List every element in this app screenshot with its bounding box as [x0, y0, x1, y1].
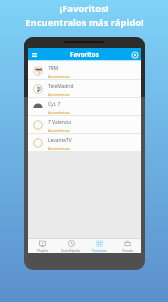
staticText: 7 Valencia — [48, 119, 72, 126]
staticText: ¡Favoritos! — [59, 2, 109, 15]
staticText: Autonómicas — [48, 92, 70, 97]
staticText: Autonómicas — [48, 146, 70, 151]
staticText: Autonómicas — [48, 74, 70, 79]
button[interactable]: Playlist — [28, 239, 57, 253]
staticText: Favoritos — [92, 248, 107, 253]
staticText: Autonómicas — [48, 128, 70, 133]
button[interactable]: 7 Valencia — [28, 116, 141, 133]
button[interactable]: Favoritos — [85, 239, 113, 253]
button[interactable]: Guía Rápida — [57, 239, 85, 253]
button[interactable]: CyL 7 — [28, 98, 141, 115]
button[interactable]: Menu — [30, 50, 39, 59]
staticText: LevanteTV — [48, 137, 72, 144]
staticText: Autonómicas — [48, 110, 70, 115]
button[interactable]: Tienda — [113, 239, 141, 253]
staticText: Encuentralos más rápido! — [25, 16, 144, 29]
staticText: Favoritos — [70, 50, 99, 58]
button[interactable]: LevanteTV — [28, 134, 141, 151]
button[interactable]: TeleMadrid — [28, 80, 141, 97]
staticText: CyL 7 — [48, 101, 61, 108]
staticText: Guía Rápida — [61, 248, 81, 253]
staticText: TeleMadrid — [48, 83, 74, 90]
staticText: Tienda — [122, 248, 133, 253]
staticText: 7RM — [48, 65, 59, 72]
button[interactable]: Sync — [130, 50, 139, 59]
staticText: Playlist — [37, 248, 49, 253]
button[interactable]: 7RM — [28, 62, 141, 79]
